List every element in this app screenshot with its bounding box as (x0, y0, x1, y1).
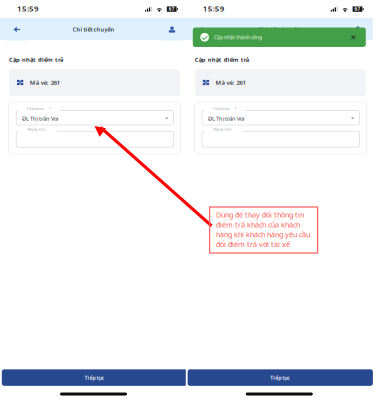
button[interactable]: Back (6, 18, 28, 40)
staticText: 15:59 (203, 3, 225, 14)
staticText: Cập nhật thành công (214, 34, 262, 41)
button[interactable]: Account (347, 18, 369, 40)
staticText: Nhập địa chỉ trả (209, 127, 236, 132)
staticText: Tiếp tục (84, 374, 104, 381)
staticText: * (49, 106, 51, 112)
staticText: Cập nhật điểm trả (195, 56, 249, 63)
staticText: Mã vé: 261 (216, 78, 246, 87)
button[interactable]: Dismiss (348, 32, 358, 42)
staticText: Trả tại kho nào (209, 106, 234, 112)
staticText: Mã vé: 261 (30, 78, 60, 87)
staticText: Tiếp tục (270, 374, 290, 381)
staticText: Cập nhật điểm trả (9, 56, 63, 63)
staticText: 67 (354, 6, 360, 12)
staticText: Dùng để thay đổi thông tin điểm trả khác… (216, 210, 310, 249)
staticText: 67 (169, 6, 175, 12)
button[interactable]: Tiếp tục (188, 369, 373, 386)
staticText: Nhập địa chỉ trả (23, 127, 50, 132)
staticText: Trả tại kho nào (23, 106, 48, 112)
button[interactable]: Back (192, 18, 214, 40)
staticText: 15:59 (17, 3, 39, 14)
staticText: Chi tiết chuyến (258, 26, 300, 33)
button[interactable]: Account (161, 18, 183, 40)
staticText: ĐL Thị trấn Voi (22, 115, 58, 122)
staticText: Chi tiết chuyến (72, 26, 114, 33)
staticText: * (234, 106, 236, 112)
staticText: ĐL Thị trấn Voi (208, 115, 244, 122)
button[interactable]: Tiếp tục (2, 369, 187, 386)
